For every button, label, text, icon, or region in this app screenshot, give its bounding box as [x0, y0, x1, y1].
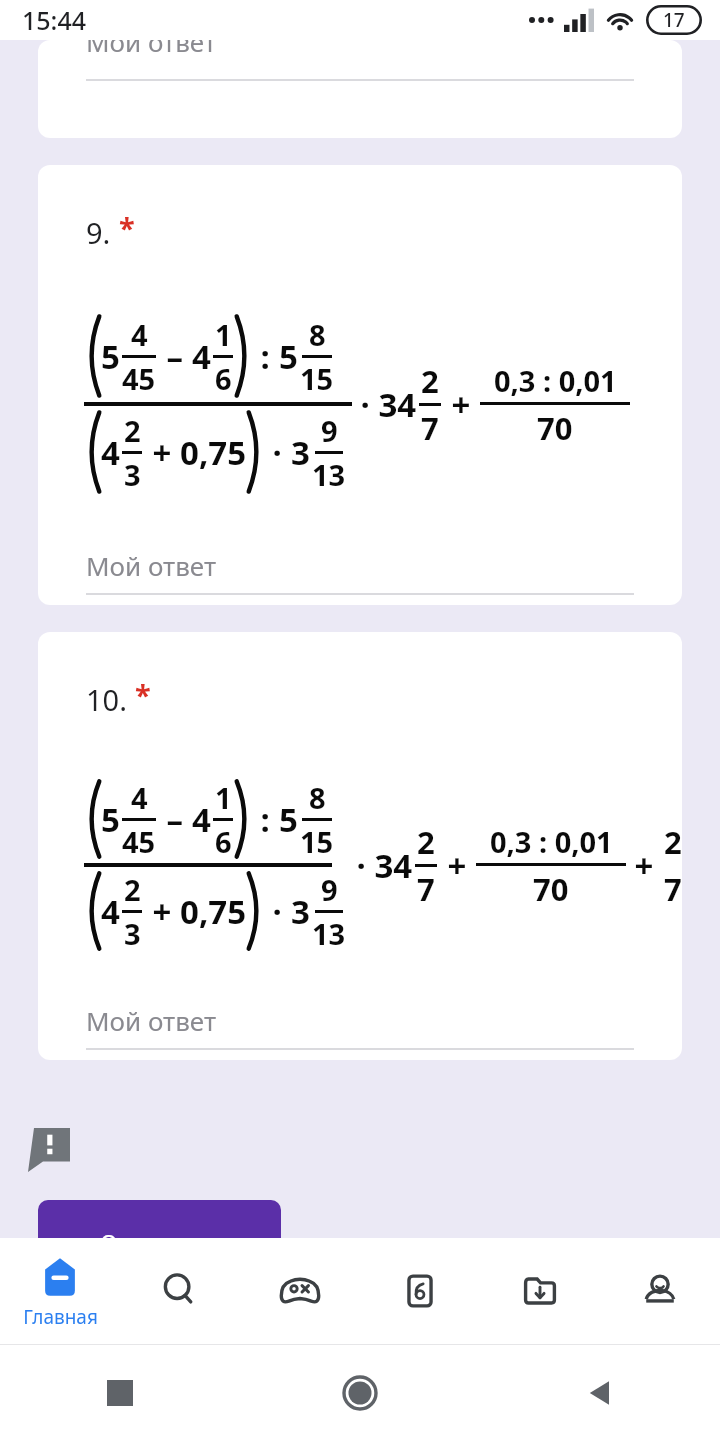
button[interactable]: Мой ответ [38, 40, 682, 138]
staticText: 10. [86, 680, 127, 719]
button[interactable]: 9. [86, 213, 135, 252]
button[interactable]: Главный экран [240, 1345, 480, 1440]
staticText: 2 [124, 870, 141, 909]
staticText: 4 [101, 889, 120, 934]
button[interactable]: Отправить [38, 1200, 281, 1284]
staticText: 9 [321, 411, 338, 450]
staticText: 45 [122, 822, 156, 861]
staticText: 5 [101, 797, 120, 842]
staticText: 45 [122, 359, 156, 398]
staticText: 1 [215, 778, 232, 817]
staticText: 4 [131, 315, 148, 354]
staticText: 15 [300, 822, 334, 861]
staticText: : [252, 797, 279, 842]
staticText: Главная [23, 1304, 98, 1330]
staticText: 7 [421, 407, 439, 449]
staticText: 5 [279, 334, 298, 379]
staticText: 4 [131, 778, 148, 817]
staticText: 8 [309, 778, 326, 817]
staticText: 1 [215, 315, 232, 354]
staticText: Мой ответ [86, 548, 217, 583]
staticText: · 34 [348, 843, 413, 888]
button[interactable]: 9. [38, 165, 682, 605]
staticText: – [158, 334, 192, 379]
staticText: 5 [279, 797, 298, 842]
button[interactable]: 10. [86, 680, 151, 719]
staticText: – [158, 797, 192, 842]
button[interactable]: Главная [0, 1238, 120, 1344]
staticText: 70 [537, 407, 573, 449]
staticText: : [252, 334, 279, 379]
staticText: 2 [124, 411, 141, 450]
staticText: Отправить [100, 1227, 220, 1258]
staticText: * [119, 208, 135, 247]
staticText: + [439, 843, 476, 888]
staticText: 2 [417, 821, 435, 863]
staticText: 8 [309, 315, 326, 354]
staticText: 4 [101, 430, 120, 475]
staticText: · [264, 889, 291, 934]
button[interactable]: 10. [38, 632, 682, 1060]
staticText: + [626, 843, 662, 888]
staticText: 13 [312, 914, 346, 953]
staticText: 0,3 : 0,01 [494, 361, 617, 400]
staticText: · 34 [352, 382, 417, 427]
staticText: * [135, 675, 151, 714]
button[interactable]: Класс [360, 1238, 480, 1344]
button[interactable]: Поиск [120, 1238, 240, 1344]
staticText: 0,3 : 0,01 [490, 822, 613, 861]
button[interactable]: Обзор [0, 1345, 240, 1440]
staticText: Мой ответ [86, 40, 217, 59]
staticText: 2 [421, 360, 439, 402]
staticText: 3 [124, 455, 141, 494]
staticText: 9 [321, 870, 338, 909]
staticText: 3 [124, 914, 141, 953]
staticText: 15:44 [22, 3, 87, 37]
button[interactable]: Пожаловаться [28, 1128, 70, 1172]
staticText: + 0,75 [144, 889, 247, 934]
button[interactable]: Профиль [600, 1238, 720, 1344]
staticText: 3 [291, 430, 310, 475]
staticText: 5 [101, 334, 120, 379]
staticText: 15 [300, 359, 334, 398]
staticText: 4 [192, 334, 211, 379]
staticText: 4 [192, 797, 211, 842]
staticText: 17 [663, 7, 685, 33]
button[interactable]: Игры [240, 1238, 360, 1344]
staticText: Мой ответ [86, 1003, 217, 1038]
staticText: 6 [215, 822, 232, 861]
staticText: 9. [86, 213, 111, 252]
staticText: 13 [312, 455, 346, 494]
button[interactable]: Загрузки [480, 1238, 600, 1344]
staticText: 3 [291, 889, 310, 934]
button[interactable]: Назад [480, 1345, 720, 1440]
staticText: + 0,75 [144, 430, 247, 475]
staticText: 6 [215, 359, 232, 398]
staticText: 70 [533, 868, 569, 910]
staticText: · [264, 430, 291, 475]
staticText: + [443, 382, 480, 427]
staticText: 7 [417, 868, 435, 910]
